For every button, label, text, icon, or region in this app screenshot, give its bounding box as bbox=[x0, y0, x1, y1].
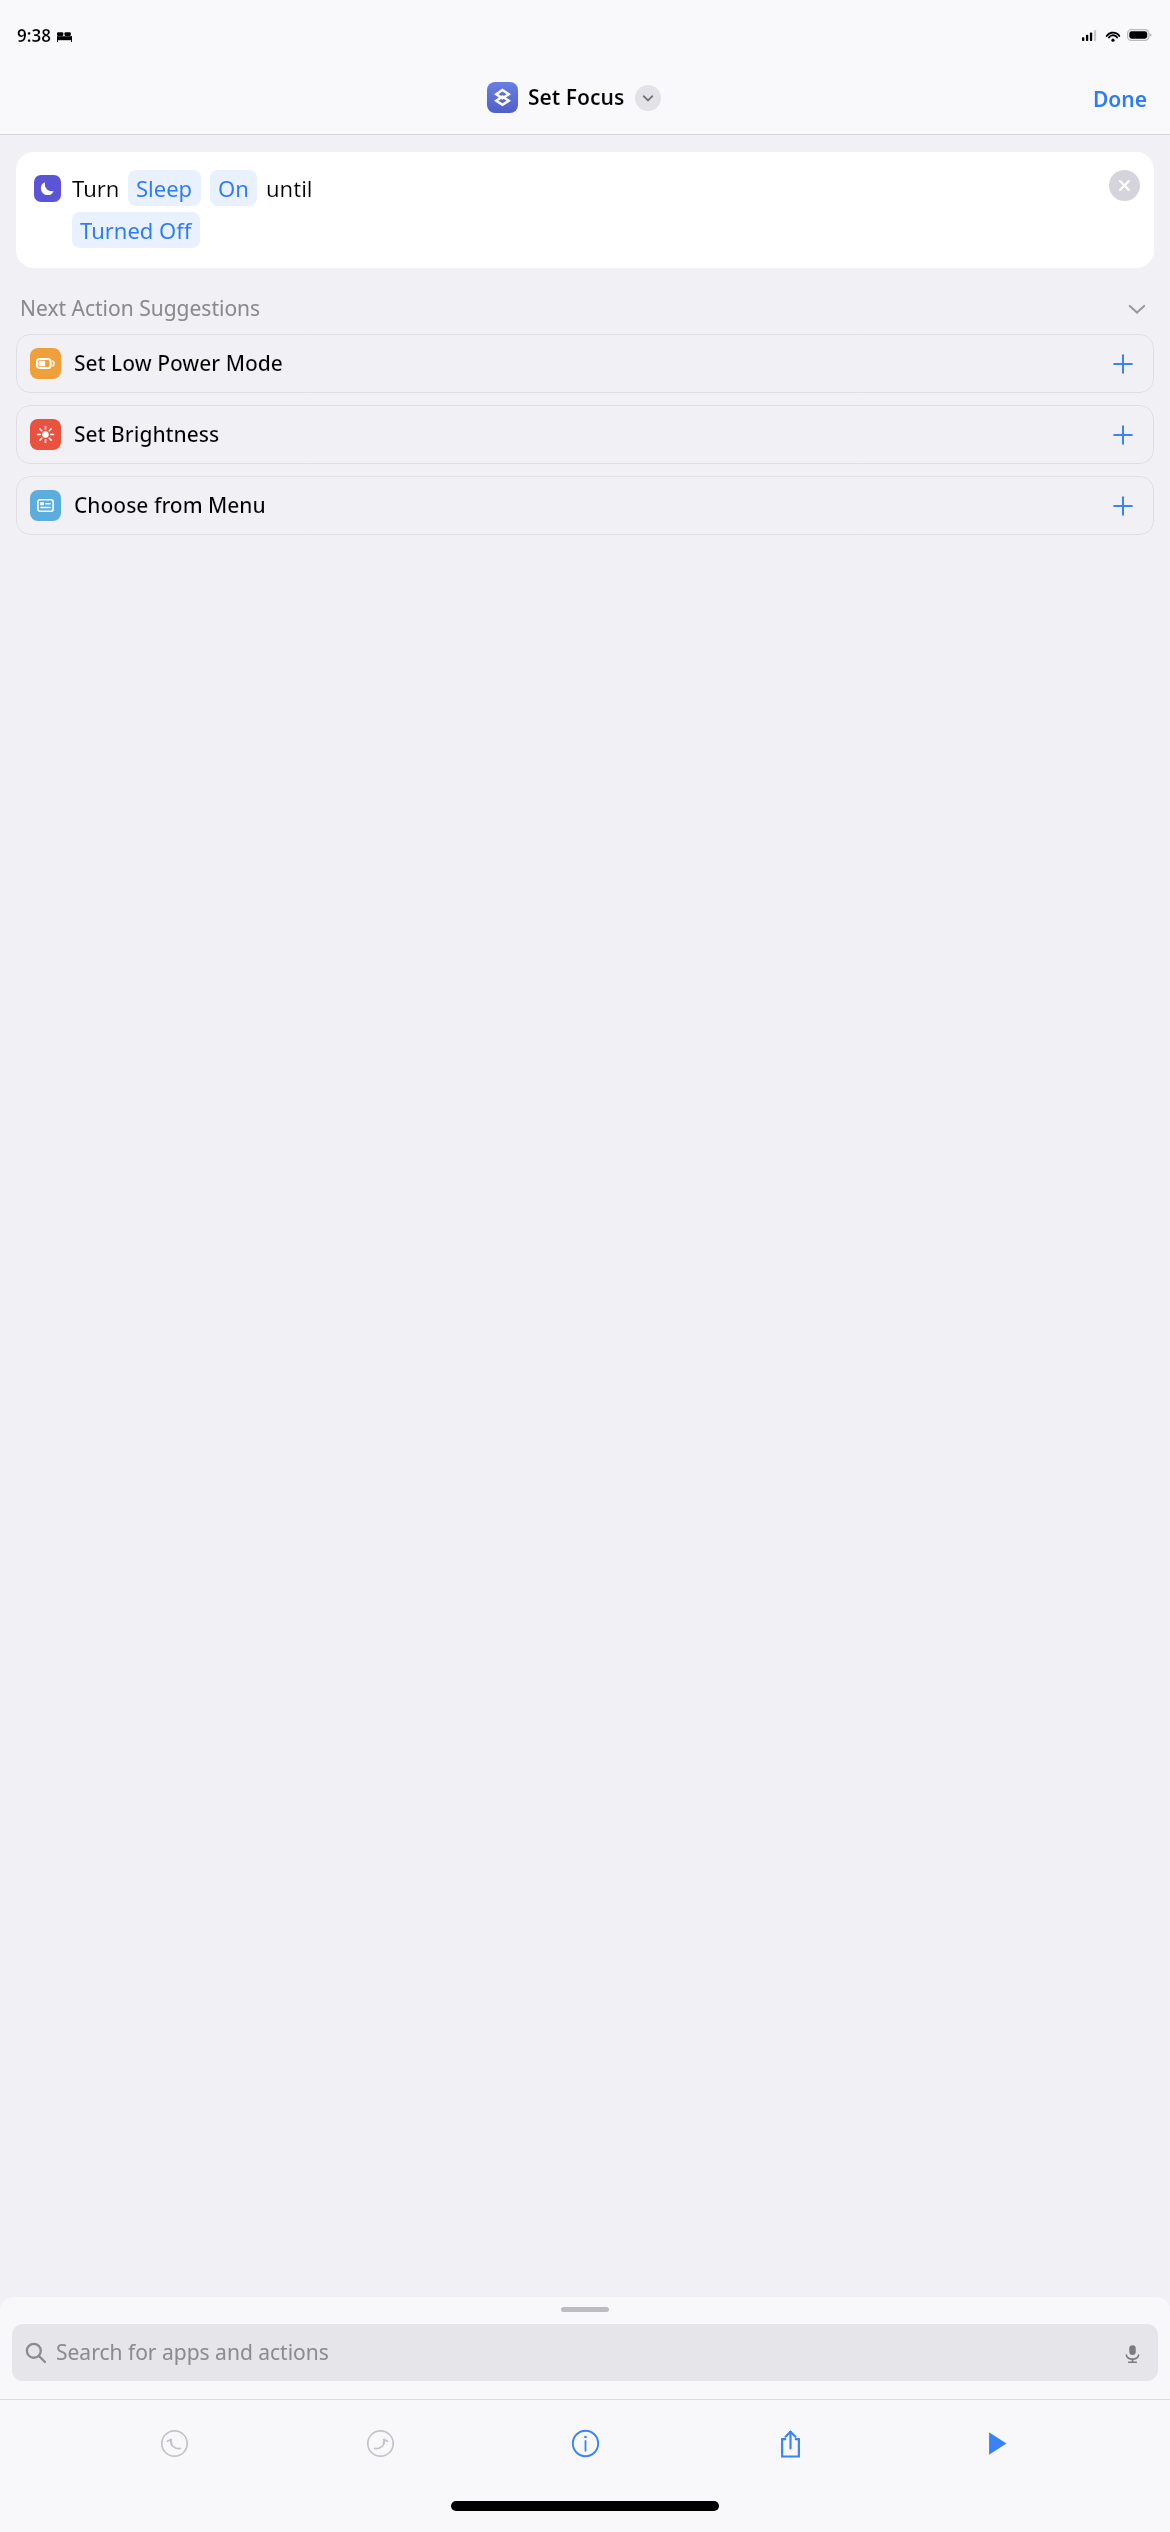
staticText: Set Brightness bbox=[74, 420, 220, 449]
button[interactable]: Set Brightness bbox=[16, 405, 1154, 464]
staticText: Turn bbox=[72, 173, 120, 203]
button[interactable]: Details bbox=[554, 2412, 616, 2474]
staticText: Search for apps and actions bbox=[56, 2338, 329, 2367]
other: Add Set Low Power Mode bbox=[1106, 347, 1140, 381]
staticText: Sleep bbox=[136, 173, 193, 203]
staticText: Next Action Suggestions bbox=[20, 294, 261, 323]
button[interactable]: Turned Off bbox=[72, 212, 200, 248]
button[interactable]: Run shortcut bbox=[965, 2412, 1027, 2474]
button[interactable]: Undo bbox=[143, 2412, 205, 2474]
other: Collapse suggestions bbox=[1124, 296, 1150, 322]
other: Add Choose from Menu bbox=[1106, 489, 1140, 523]
staticText: until bbox=[266, 173, 313, 203]
staticText: 9:38 bbox=[17, 24, 51, 47]
button[interactable]: Remove action bbox=[1109, 170, 1140, 201]
other: Add Set Brightness bbox=[1106, 418, 1140, 452]
other: Show shortcut options bbox=[635, 85, 661, 111]
button[interactable]: Search for apps and actions bbox=[12, 2324, 1158, 2381]
staticText: Done bbox=[1093, 85, 1148, 114]
button[interactable]: Set Focus bbox=[487, 82, 661, 113]
staticText: Set Focus bbox=[528, 83, 625, 112]
button[interactable]: Share bbox=[759, 2412, 821, 2474]
button[interactable]: Redo bbox=[349, 2412, 411, 2474]
button[interactable]: Next Action Suggestions bbox=[20, 294, 1150, 323]
other: Voice search bbox=[1119, 2340, 1145, 2366]
button[interactable]: Turn bbox=[16, 152, 1154, 268]
button[interactable]: On bbox=[210, 170, 257, 206]
button[interactable]: Done bbox=[1083, 79, 1158, 120]
button[interactable]: Choose from Menu bbox=[16, 476, 1154, 535]
button[interactable]: Sleep bbox=[128, 170, 201, 206]
button[interactable]: Set Low Power Mode bbox=[16, 334, 1154, 393]
staticText: Choose from Menu bbox=[74, 491, 266, 520]
staticText: On bbox=[218, 173, 249, 203]
staticText: Turned Off bbox=[80, 215, 192, 245]
staticText: Set Low Power Mode bbox=[74, 349, 283, 378]
